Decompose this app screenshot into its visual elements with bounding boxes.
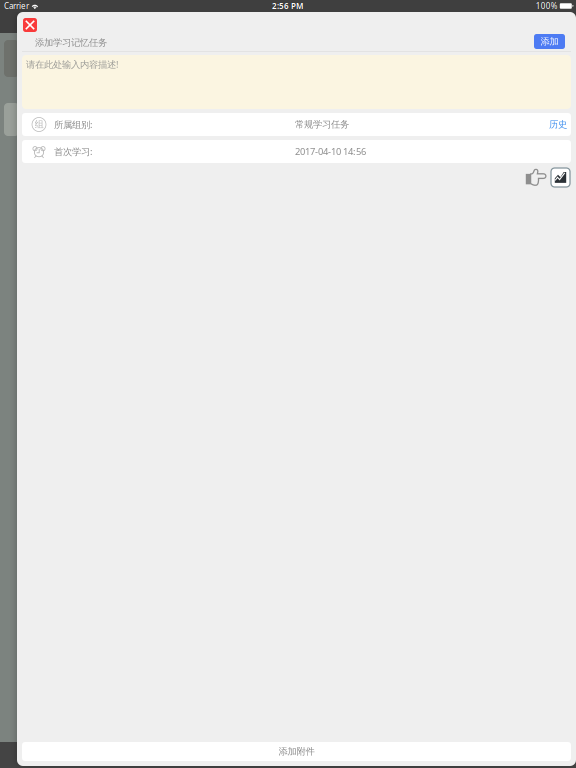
staticText: 首次学习: [54, 145, 93, 158]
button[interactable]: Recommend [525, 168, 547, 186]
button[interactable]: 历史 [549, 119, 567, 130]
button[interactable]: Statistics [551, 168, 570, 187]
staticText: 2017-04-10 14:56 [295, 145, 366, 158]
button[interactable]: Close [23, 18, 37, 32]
staticText: 所属组别: [54, 118, 93, 131]
staticText: 请在此处输入内容描述! [26, 58, 119, 70]
staticText: 添加附件 [278, 746, 314, 757]
staticText: 添加 [540, 36, 558, 47]
staticText: 添加学习记忆任务 [35, 37, 107, 48]
staticText: 100% [536, 1, 558, 11]
staticText: 常规学习任务 [295, 119, 349, 130]
button[interactable]: 添加附件 [22, 742, 571, 761]
staticText: Carrier [4, 1, 29, 11]
staticText: 组 [34, 119, 43, 130]
staticText: 历史 [549, 119, 567, 130]
staticText: 2:56 PM [272, 1, 303, 11]
button[interactable]: 添加 [534, 34, 565, 49]
